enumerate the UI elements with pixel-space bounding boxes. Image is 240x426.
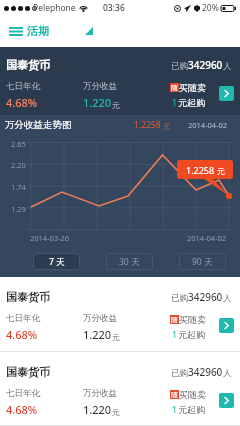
- staticText: 1.2258: [134, 119, 161, 131]
- staticText: 元: [217, 166, 225, 176]
- staticText: 随: [171, 83, 178, 92]
- button[interactable]: Buy: [219, 393, 234, 408]
- staticText: 1: [172, 328, 178, 340]
- staticText: 4.68%: [6, 95, 38, 110]
- staticText: 元: [112, 332, 120, 342]
- staticText: 342960: [188, 365, 223, 379]
- staticText: 2.20: [11, 160, 26, 170]
- staticText: 已购: [171, 293, 188, 304]
- staticText: 七日年化: [6, 313, 40, 324]
- staticText: 已购: [171, 61, 188, 72]
- staticText: 342960: [188, 58, 223, 72]
- staticText: 90 天: [192, 256, 213, 268]
- staticText: 随: [171, 390, 178, 399]
- staticText: 元起购: [178, 404, 205, 415]
- button[interactable]: Menu: [0, 18, 57, 44]
- staticText: 元: [112, 407, 120, 417]
- staticText: 1.29: [11, 204, 26, 214]
- staticText: 03:36: [103, 2, 125, 14]
- staticText: 活期: [27, 24, 49, 38]
- staticText: 国泰货币: [6, 58, 50, 72]
- staticText: 国泰货币: [6, 365, 50, 379]
- staticText: 人: [223, 293, 232, 304]
- staticText: 七日年化: [6, 388, 40, 399]
- staticText: 1: [172, 96, 178, 108]
- staticText: 人: [223, 368, 232, 379]
- staticText: 元: [163, 122, 171, 131]
- staticText: 买随卖: [179, 82, 206, 93]
- staticText: 1.220: [83, 402, 112, 417]
- staticText: 买随卖: [179, 389, 206, 400]
- staticText: 4.68%: [6, 402, 38, 417]
- staticText: 人: [223, 61, 232, 72]
- button[interactable]: 国泰货币: [0, 47, 240, 115]
- staticText: 元: [112, 100, 120, 110]
- staticText: 2.65: [11, 139, 26, 149]
- staticText: 2014-04-02: [187, 233, 227, 243]
- staticText: 万分收益: [83, 388, 117, 399]
- staticText: 1.2258: [186, 164, 215, 176]
- staticText: 国泰货币: [6, 290, 50, 304]
- staticText: 1.74: [11, 182, 26, 192]
- button[interactable]: 国泰货币: [0, 277, 240, 352]
- staticText: 7 天: [49, 256, 65, 268]
- staticText: Pelephone: [33, 2, 76, 14]
- staticText: 万分收益: [83, 313, 117, 324]
- staticText: 1.220: [83, 95, 112, 110]
- staticText: 4.68%: [6, 327, 38, 342]
- button[interactable]: 30 天: [106, 253, 153, 270]
- staticText: 342960: [188, 290, 223, 304]
- button[interactable]: Buy: [219, 318, 234, 333]
- staticText: 1: [172, 403, 178, 415]
- staticText: 20%: [202, 2, 219, 14]
- staticText: 30 天: [119, 256, 140, 268]
- staticText: 已购: [171, 368, 188, 379]
- button[interactable]: 90 天: [179, 253, 226, 270]
- staticText: 七日年化: [6, 81, 40, 92]
- staticText: 1.220: [83, 327, 112, 342]
- staticText: 买随卖: [179, 314, 206, 325]
- staticText: 元起购: [178, 97, 205, 108]
- staticText: 2014-04-02: [188, 120, 228, 130]
- staticText: 2014-03-26: [30, 233, 70, 243]
- staticText: 万分收益: [83, 81, 117, 92]
- staticText: 元起购: [178, 329, 205, 340]
- other: Signal: [85, 27, 93, 35]
- button[interactable]: 国泰货币: [0, 352, 240, 426]
- other: Menu: [9, 27, 23, 36]
- staticText: 随: [171, 315, 178, 324]
- button[interactable]: Buy: [219, 86, 234, 101]
- staticText: 万分收益走势图: [5, 119, 72, 131]
- button[interactable]: 7 天: [33, 253, 80, 270]
